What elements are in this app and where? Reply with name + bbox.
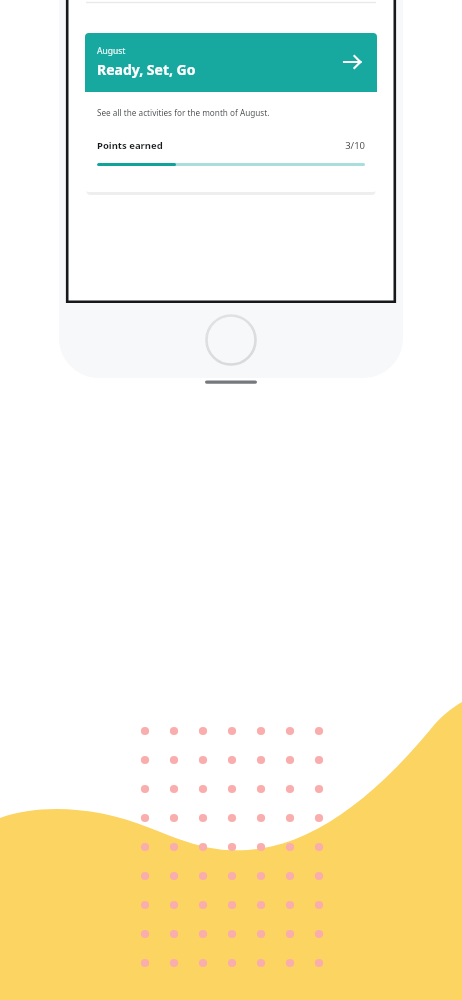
staticText: 3/10 xyxy=(345,139,365,152)
staticText: Ready, Set, Go xyxy=(97,60,196,79)
staticText: Points earned xyxy=(97,139,345,152)
staticText: See all the activities for the month of … xyxy=(97,107,270,118)
other: Open August activities xyxy=(339,49,365,75)
button[interactable]: August xyxy=(85,33,377,92)
staticText: August xyxy=(97,45,126,57)
